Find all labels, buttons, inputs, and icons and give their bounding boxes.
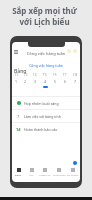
staticText: T7 [63,73,67,77]
staticText: Hoàn thành báo cáo [24,127,58,132]
button[interactable]: Lịch [25,168,38,176]
button[interactable]: T7 [60,73,70,86]
button[interactable]: CN [70,73,80,86]
button[interactable]: 7 [12,110,80,122]
staticText: T4 [33,73,37,77]
staticText: 3 [34,79,37,84]
button[interactable]: Bảng [12,168,25,176]
button[interactable]: Họp nhóm buổi sáng [12,97,80,109]
staticText: 7 [74,79,77,84]
staticText: Làm việc với bảng tính [24,114,61,119]
staticText: với Lịch biểu [19,16,70,27]
staticText: CN [73,73,78,77]
button[interactable]: 14 [12,123,80,135]
staticText: Thông báo [53,173,66,176]
button[interactable]: Account 2 [73,49,77,53]
staticText: Bảng [14,68,27,75]
staticText: Tài khoản [67,173,79,176]
staticText: T3 [24,73,28,77]
staticText: 6 [64,79,67,84]
staticText: T6 [53,73,57,77]
button[interactable]: T3 [21,73,30,86]
staticText: Sắp xếp mọi thứ [12,5,77,16]
button[interactable]: Menu [13,49,19,55]
button[interactable]: T6 [50,73,60,86]
staticText: 4 [44,79,47,84]
staticText: T2 [15,73,19,77]
staticText: 2 [24,79,27,84]
staticText: T5 [43,73,47,77]
button[interactable]: Tài khoản [66,168,80,176]
button[interactable]: Thông báo [52,168,66,176]
button[interactable]: Account 1 [67,49,71,53]
staticText: Công việc hàng tuần [12,63,80,68]
staticText: Bảng [15,173,22,176]
button[interactable]: Create [73,161,77,165]
staticText: 7 [17,114,20,119]
staticText: 14 [16,127,21,132]
staticText: Công việc hàng tuần [12,51,80,56]
staticText: Nhiệm vụ [39,173,51,176]
button[interactable]: T5 [40,73,50,88]
staticText: Lịch [29,173,34,176]
staticText: 5 [54,79,57,84]
button[interactable]: Nhiệm vụ [38,168,52,176]
staticText: 1 [15,79,18,84]
staticText: Họp nhóm buổi sáng [24,101,59,106]
button[interactable]: T4 [30,73,40,86]
button[interactable]: T2 [12,73,21,86]
